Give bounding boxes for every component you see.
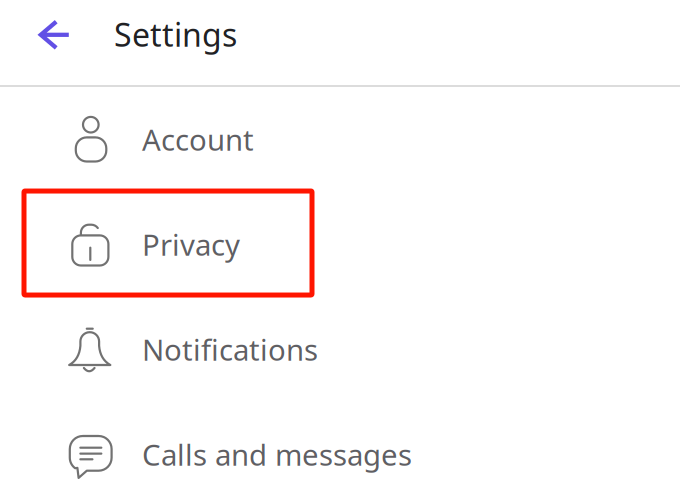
staticText: Calls and messages (142, 435, 412, 474)
button[interactable]: Privacy (0, 192, 680, 297)
staticText: Notifications (142, 330, 318, 369)
button[interactable]: Notifications (0, 297, 680, 402)
staticText: Settings (114, 13, 237, 55)
staticText: Account (142, 120, 254, 159)
button[interactable]: Account (0, 87, 680, 192)
button[interactable]: Calls and messages (0, 402, 680, 497)
button[interactable]: Back (0, 0, 96, 85)
staticText: Privacy (142, 225, 240, 264)
